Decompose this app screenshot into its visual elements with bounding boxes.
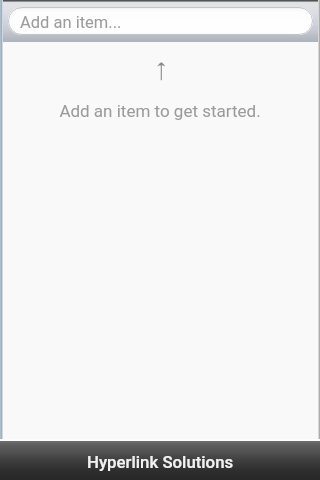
- staticText: Add an item to get started.: [59, 101, 261, 121]
- staticText: Hyperlink Solutions: [87, 452, 234, 472]
- staticText: Add an item...: [20, 13, 122, 32]
- other: Add an item: [155, 61, 167, 82]
- button[interactable]: Hyperlink Solutions: [0, 441, 320, 480]
- button[interactable]: Add an item...: [8, 7, 313, 35]
